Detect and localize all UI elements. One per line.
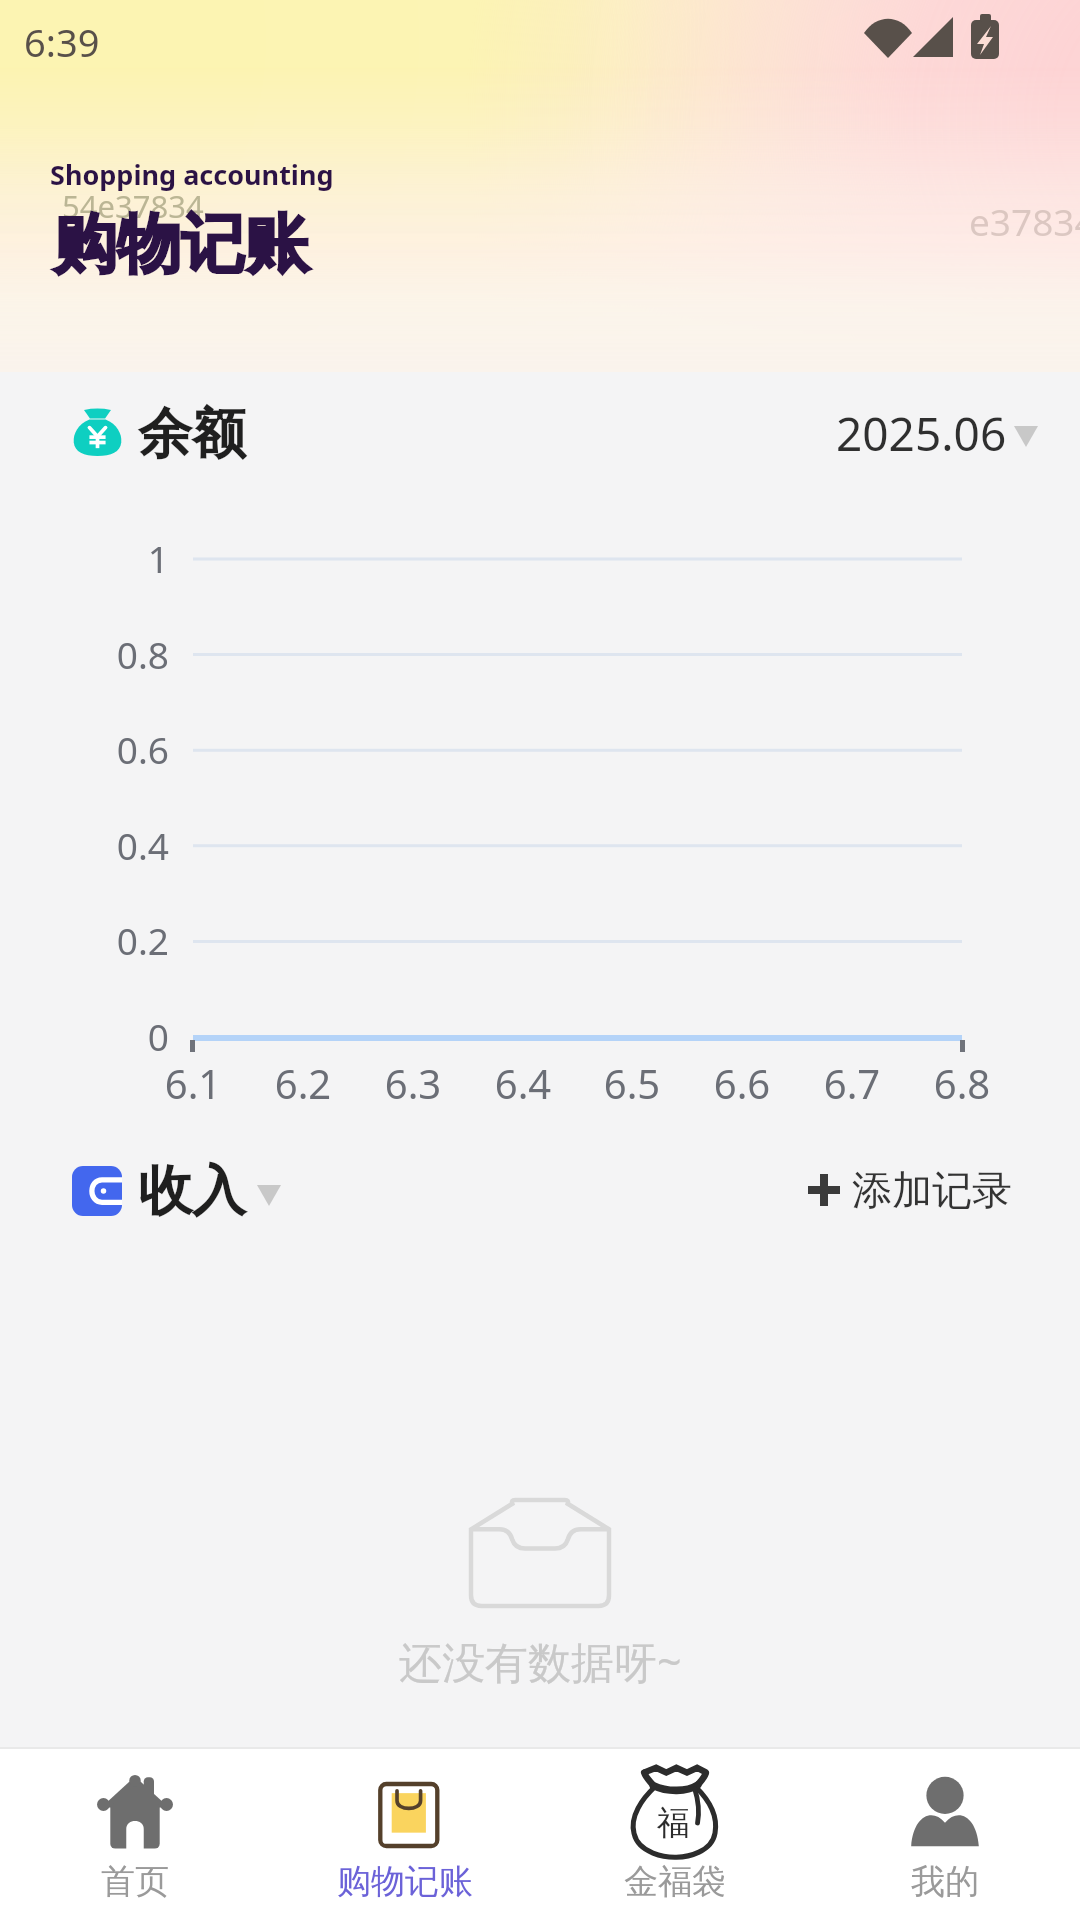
staticText: 6.6 xyxy=(682,1056,802,1110)
staticText: 收入 xyxy=(138,1157,246,1225)
staticText: 福 xyxy=(657,1802,690,1844)
staticText: 54e37834 xyxy=(62,185,204,227)
staticText: 首页 xyxy=(101,1860,169,1903)
button[interactable]: 收入 xyxy=(64,1157,289,1225)
staticText: 0.2 xyxy=(0,915,169,965)
staticText: Shopping accounting xyxy=(50,156,334,193)
staticText: 我的 xyxy=(911,1860,979,1903)
staticText: 购物记账 xyxy=(337,1860,473,1903)
other: Wi-Fi, mobile signal and battery status xyxy=(864,13,1000,59)
staticText: 6.3 xyxy=(353,1056,473,1110)
button[interactable]: 我的 xyxy=(810,1749,1080,1920)
staticText: 0.8 xyxy=(0,629,169,679)
staticText: 金福袋 xyxy=(624,1860,726,1903)
staticText: 6.5 xyxy=(572,1056,692,1110)
staticText: 购物记账 xyxy=(53,204,309,285)
button[interactable]: 购物记账 xyxy=(270,1749,540,1920)
staticText: 1 xyxy=(0,533,169,583)
staticText: 还没有数据呀~ xyxy=(399,1632,682,1691)
staticText: e37834 xyxy=(969,196,1080,246)
staticText: 余额 xyxy=(138,400,246,468)
staticText: 6.1 xyxy=(133,1056,253,1110)
staticText: 6.7 xyxy=(792,1056,912,1110)
staticText: 6:39 xyxy=(24,16,100,68)
button[interactable]: 添加记录 xyxy=(800,1157,1020,1223)
button[interactable]: 福 xyxy=(540,1749,810,1920)
button[interactable]: 2025.06 xyxy=(828,396,1046,466)
staticText: 0.6 xyxy=(0,724,169,774)
staticText: 6.8 xyxy=(902,1056,1022,1110)
button[interactable]: 首页 xyxy=(0,1749,270,1920)
staticText: 添加记录 xyxy=(852,1165,1012,1215)
staticText: 0.4 xyxy=(0,820,169,870)
staticText: 0 xyxy=(0,1011,169,1061)
staticText: 2025.06 xyxy=(836,402,1007,460)
staticText: 6.4 xyxy=(463,1056,583,1110)
staticText: 6.2 xyxy=(243,1056,363,1110)
